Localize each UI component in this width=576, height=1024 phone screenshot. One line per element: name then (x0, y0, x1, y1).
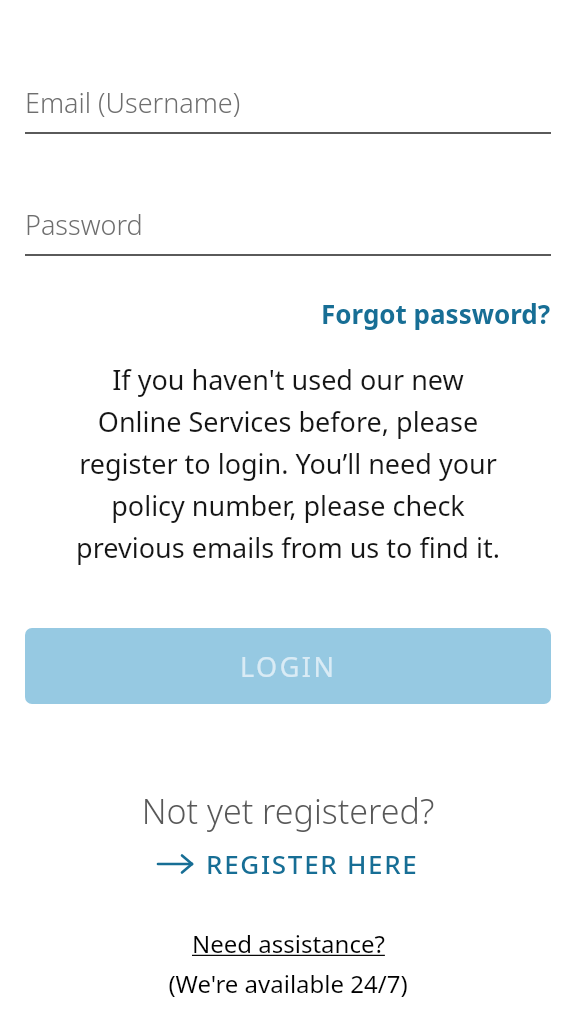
staticText: Forgot password? (321, 296, 551, 331)
button[interactable]: Register here arrow (154, 844, 423, 883)
button[interactable]: Need assistance? (192, 927, 385, 960)
staticText: REGISTER HERE (206, 846, 419, 881)
button[interactable]: Password (25, 206, 551, 256)
staticText: Password (25, 206, 143, 243)
staticText: LOGIN (240, 648, 337, 685)
staticText: Email (Username) (25, 84, 241, 121)
button[interactable]: Forgot password? (321, 296, 551, 331)
button[interactable]: Email (Username) (25, 84, 551, 134)
button[interactable]: LOGIN (25, 628, 551, 704)
staticText: Not yet registered? (25, 788, 551, 834)
staticText: (We're available 24/7) (25, 967, 551, 1000)
other: Register here arrow (158, 853, 192, 875)
staticText: If you haven't used our new Online Servi… (67, 361, 509, 566)
